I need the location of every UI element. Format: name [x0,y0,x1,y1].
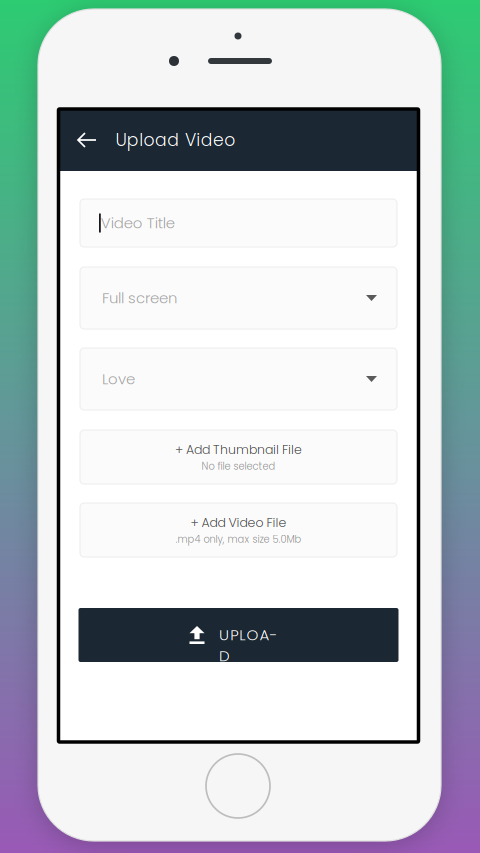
button[interactable]: Back [58,109,115,171]
staticText: Full screen [102,287,177,308]
button[interactable]: Love [80,348,397,410]
button[interactable]: Video Title [80,199,397,247]
staticText: Love [102,368,135,389]
staticText: UPLOAD [219,624,282,646]
staticText: .mp4 only, max size 5.0Mb [175,532,301,546]
button[interactable]: + Add Thumbnail File [80,430,397,484]
staticText: + Add Thumbnail File [175,441,302,458]
staticText: + Add Video File [190,514,286,531]
button[interactable]: UPLOAD [78,608,398,662]
button[interactable]: Full screen [80,267,397,329]
staticText: No file selected [201,459,275,473]
staticText: Upload Video [115,128,235,152]
button[interactable]: + Add Video File [80,503,397,557]
staticText: Video Title [101,212,175,233]
